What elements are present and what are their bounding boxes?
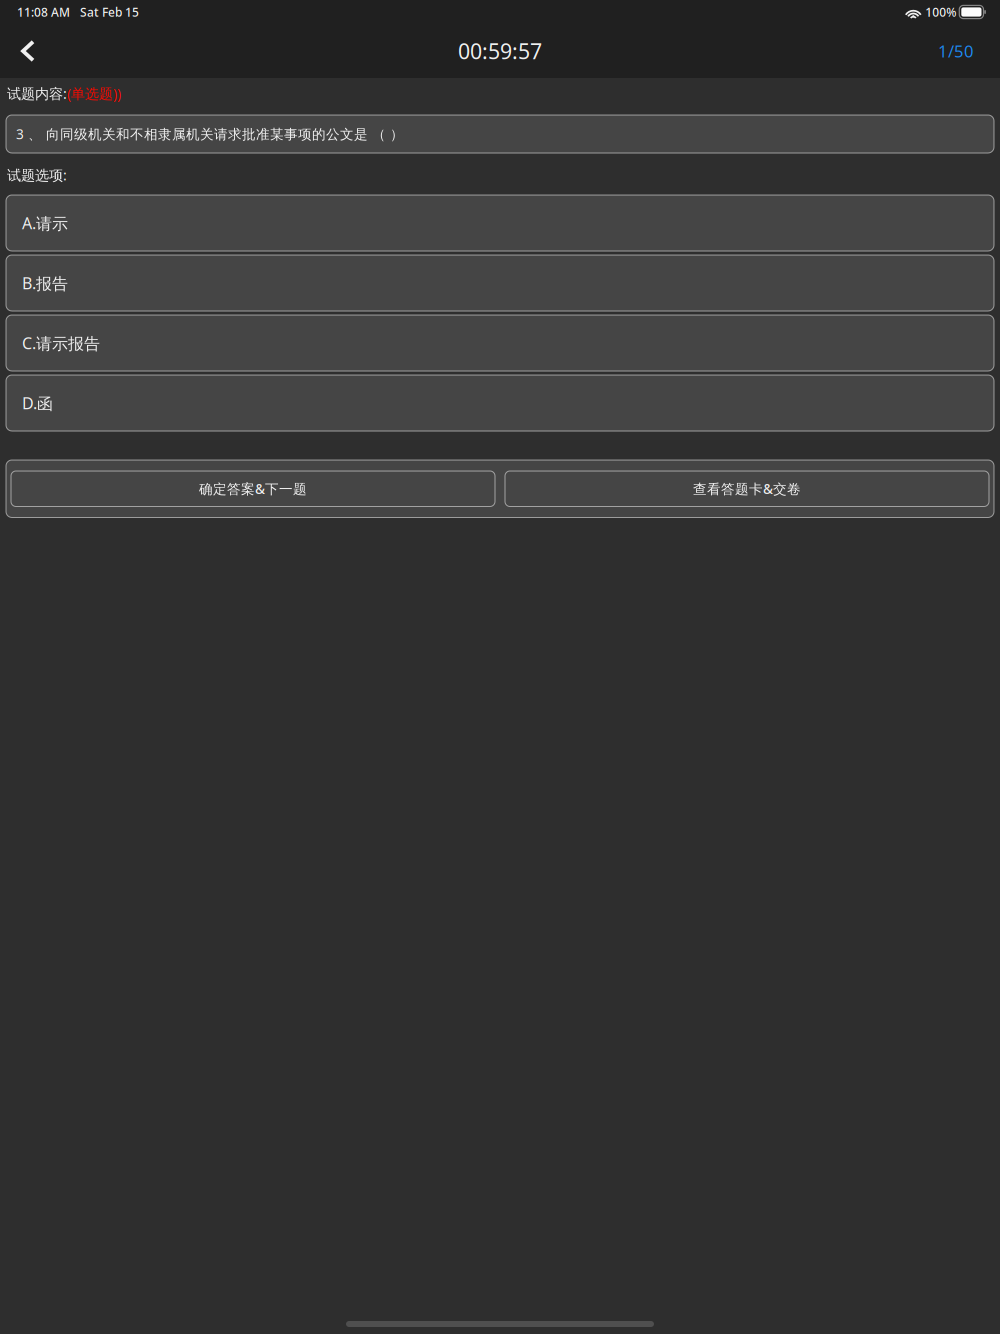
staticText: B.报告 (22, 272, 68, 294)
staticText: 查看答题卡&交卷 (693, 479, 801, 498)
button[interactable]: D.函 (6, 375, 994, 431)
button[interactable]: A.请示 (6, 195, 994, 251)
staticText: 11:08 AM (17, 4, 70, 20)
staticText: 试题选项: (7, 165, 67, 185)
button[interactable]: 确定答案&下一题 (11, 471, 495, 506)
staticText: (单选题)) (67, 84, 121, 103)
button[interactable]: C.请示报告 (6, 315, 994, 371)
button[interactable]: B.报告 (6, 255, 994, 311)
staticText: A.请示 (22, 212, 68, 234)
staticText: 100% (925, 4, 956, 20)
staticText: 确定答案&下一题 (199, 479, 307, 498)
staticText: Sat Feb 15 (80, 4, 139, 20)
button[interactable]: Back (0, 24, 65, 78)
staticText: 1/50 (938, 40, 974, 62)
staticText: 试题内容: (7, 84, 67, 103)
button[interactable]: 查看答题卡&交卷 (505, 471, 989, 506)
staticText: 00:59:57 (458, 36, 542, 66)
staticText: 3 、 向同级机关和不相隶属机关请求批准某事项的公文是 （ ） (16, 125, 404, 143)
staticText: C.请示报告 (22, 332, 100, 354)
button[interactable]: 1/50 (914, 24, 1000, 78)
staticText: D.函 (22, 392, 53, 414)
